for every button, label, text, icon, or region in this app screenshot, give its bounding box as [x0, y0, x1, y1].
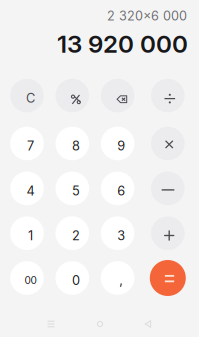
staticText: 1	[28, 228, 33, 243]
staticText: 5	[72, 183, 80, 199]
staticText: 13 920 000	[57, 29, 188, 59]
staticText: ,	[119, 273, 123, 288]
button[interactable]: Percent	[55, 79, 89, 112]
staticText: 4	[27, 183, 35, 199]
button[interactable]: Back	[137, 313, 159, 335]
button[interactable]: 7	[10, 127, 44, 160]
staticText: 7	[27, 138, 34, 154]
button[interactable]: Add	[151, 216, 185, 250]
button[interactable]: 5	[55, 172, 89, 205]
button[interactable]: 00	[10, 261, 44, 295]
button[interactable]: 6	[101, 172, 134, 205]
button[interactable]: 3	[101, 216, 134, 250]
button[interactable]: Recents	[40, 313, 62, 335]
button[interactable]: 1	[10, 216, 44, 250]
button[interactable]: 2	[55, 216, 89, 250]
button[interactable]: 4	[10, 172, 44, 205]
staticText: 00	[25, 274, 37, 287]
button[interactable]: Subtract	[151, 172, 185, 205]
button[interactable]: Backspace	[101, 79, 134, 112]
button[interactable]: 0	[55, 261, 89, 295]
button[interactable]: Multiply	[151, 127, 185, 160]
button[interactable]: 8	[55, 127, 89, 160]
staticText: 8	[72, 138, 80, 154]
staticText: 2 320×6 000	[107, 8, 187, 24]
staticText: 6	[117, 183, 125, 199]
button[interactable]: 9	[101, 127, 134, 160]
staticText: 2	[72, 228, 80, 243]
button[interactable]: ,	[101, 261, 134, 295]
button[interactable]: Home	[89, 313, 111, 335]
staticText: 0	[72, 273, 80, 288]
button[interactable]: Equals	[150, 260, 186, 296]
staticText: 9	[117, 138, 125, 154]
staticText: C	[26, 90, 35, 106]
button[interactable]: Divide	[151, 79, 185, 112]
staticText: 3	[117, 228, 125, 243]
button[interactable]: Clear	[10, 79, 44, 112]
